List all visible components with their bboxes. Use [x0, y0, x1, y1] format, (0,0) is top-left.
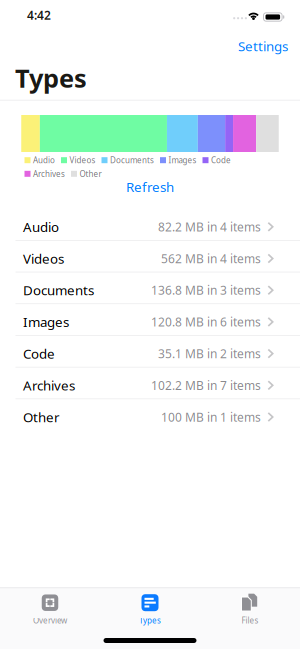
staticText: Refresh: [126, 178, 174, 196]
staticText: Archives: [33, 168, 65, 179]
staticText: Audio: [23, 218, 59, 236]
button[interactable]: Refresh: [126, 176, 174, 197]
staticText: 82.2 MB in 4 items: [158, 219, 261, 235]
button[interactable]: Videos: [0, 241, 300, 272]
button[interactable]: Documents: [0, 272, 300, 303]
staticText: 136.8 MB in 3 items: [151, 282, 261, 298]
staticText: 100 MB in 1 items: [161, 409, 261, 425]
staticText: Settings: [238, 37, 288, 55]
button[interactable]: Overview: [0, 594, 100, 626]
button[interactable]: Audio: [0, 209, 300, 240]
staticText: Other: [23, 408, 60, 426]
staticText: Overview: [33, 615, 67, 626]
staticText: 4:42: [27, 7, 51, 23]
staticText: 35.1 MB in 2 items: [158, 346, 261, 361]
button[interactable]: Images: [0, 304, 300, 335]
staticText: 102.2 MB in 7 items: [151, 377, 261, 393]
staticText: Audio: [33, 155, 55, 165]
staticText: Types: [15, 61, 87, 95]
staticText: Code: [23, 345, 55, 362]
staticText: Types: [139, 615, 161, 626]
button[interactable]: Files: [200, 594, 300, 626]
staticText: Videos: [23, 250, 64, 267]
button[interactable]: Code: [0, 336, 300, 367]
staticText: Documents: [110, 155, 154, 165]
staticText: Documents: [23, 281, 94, 299]
button[interactable]: Other: [0, 399, 300, 430]
button[interactable]: Archives: [0, 367, 300, 398]
staticText: Images: [168, 155, 196, 165]
staticText: Videos: [69, 155, 95, 165]
button[interactable]: Types: [100, 594, 200, 626]
staticText: Other: [79, 168, 101, 179]
staticText: Archives: [23, 376, 75, 394]
staticText: 562 MB in 4 items: [161, 250, 261, 266]
staticText: Code: [211, 155, 231, 165]
button[interactable]: Settings: [238, 37, 288, 55]
staticText: Images: [23, 313, 69, 331]
staticText: 120.8 MB in 6 items: [151, 314, 261, 330]
staticText: Files: [241, 615, 258, 626]
